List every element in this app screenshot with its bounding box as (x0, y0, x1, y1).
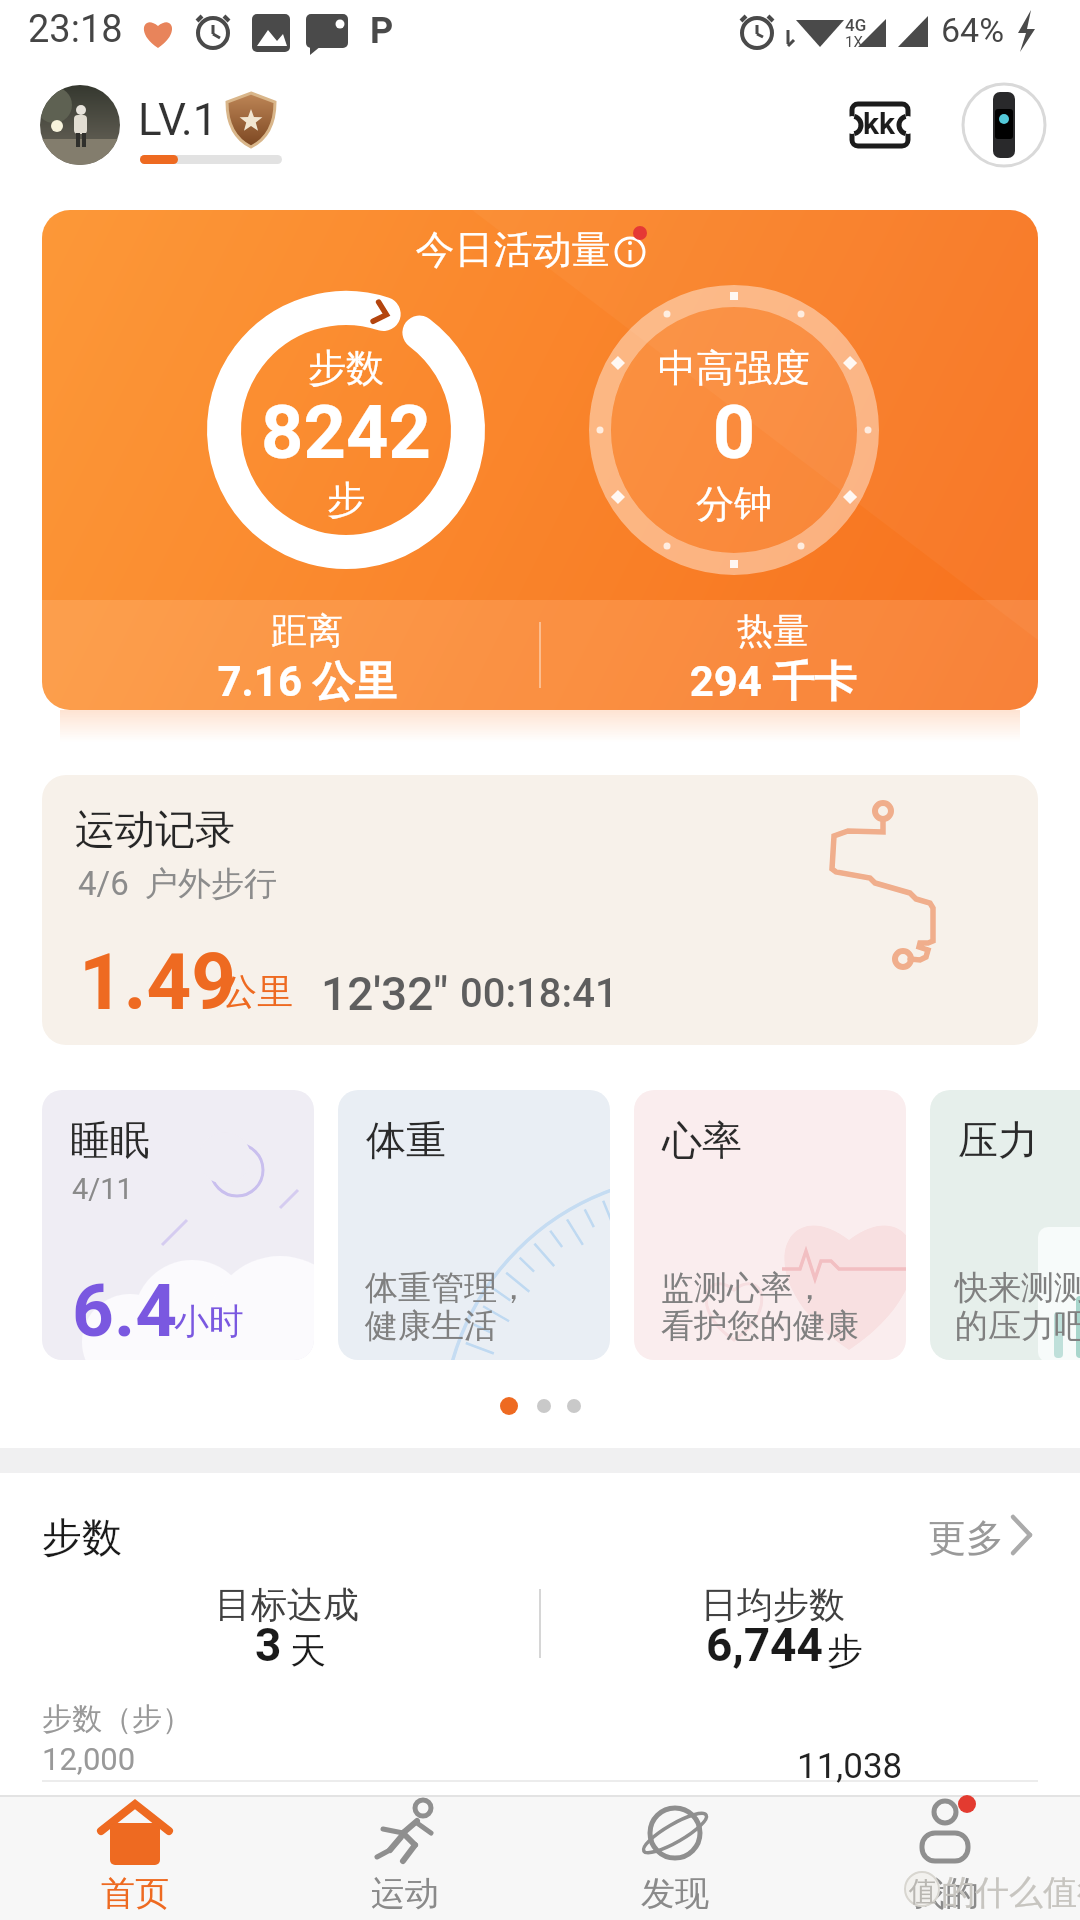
staticText: 6.4 (72, 1268, 178, 1354)
staticText: kk (863, 106, 896, 141)
staticText: 1.49 (79, 937, 236, 1028)
staticText: 更多 (928, 1514, 1004, 1562)
staticText: P (370, 10, 394, 52)
staticText: 步 (827, 1628, 863, 1673)
staticText: 64% (941, 10, 1005, 50)
button[interactable]: 压力 (930, 1090, 1080, 1360)
staticText: 压力 (958, 1115, 1038, 1165)
button[interactable] (962, 83, 1046, 167)
staticText: 23:18 (28, 7, 123, 52)
button[interactable]: 今日活动量 (42, 210, 1038, 710)
staticText: 今日活动量 (42, 225, 1011, 274)
button[interactable]: 发现 (575, 1795, 775, 1920)
staticText: 运动记录 (75, 804, 235, 854)
staticText: 的什么值得买 (941, 1871, 1080, 1914)
staticText: 心率 (662, 1115, 742, 1165)
staticText: LV.1 (138, 94, 218, 146)
staticText: 12,000 (42, 1741, 136, 1777)
staticText: 步数 (42, 1512, 122, 1562)
staticText: 00:18:41 (460, 970, 618, 1017)
button[interactable]: 体重 (338, 1090, 610, 1360)
staticText: 睡眠 (70, 1115, 150, 1165)
staticText: 4/11 (72, 1172, 133, 1206)
button[interactable]: 我的 (845, 1795, 1045, 1920)
staticText: 目标达成 (167, 1582, 407, 1627)
staticText: 4/6 户外步行 (78, 863, 278, 905)
staticText: 8242 (196, 389, 496, 476)
staticText: 中高强度 (614, 344, 854, 392)
staticText: 我的 (845, 1872, 1045, 1915)
button[interactable]: 睡眠 (42, 1090, 314, 1360)
staticText: 11,038 (797, 1746, 903, 1787)
button[interactable] (900, 1500, 1050, 1560)
staticText: 运动 (305, 1872, 505, 1915)
staticText: 值 (909, 1874, 937, 1909)
staticText: 健康生活 (365, 1305, 497, 1347)
button[interactable]: 运动 (305, 1795, 505, 1920)
staticText: 热量 (653, 608, 893, 653)
staticText: 的压力吧 (955, 1305, 1080, 1347)
staticText: 日均步数 (653, 1582, 893, 1627)
staticText: 天 (290, 1628, 326, 1673)
staticText: 6,744 (706, 1618, 823, 1672)
staticText: 1X (845, 33, 863, 51)
staticText: 3 (255, 1618, 282, 1672)
staticText: 监测心率， (661, 1267, 826, 1309)
button[interactable]: 首页 (35, 1795, 235, 1920)
staticText: 距离 (187, 608, 427, 653)
staticText: 看护您的健康 (661, 1305, 859, 1347)
staticText: 首页 (35, 1872, 235, 1915)
staticText: 公里 (221, 969, 293, 1014)
staticText: 步数（步） (42, 1700, 192, 1738)
staticText: 体重 (366, 1115, 446, 1165)
staticText: 快来测测 (955, 1267, 1080, 1309)
staticText: 分钟 (614, 480, 854, 528)
staticText: 步数 (226, 344, 466, 392)
staticText: 0 (614, 389, 854, 476)
staticText: 小时 (174, 1299, 244, 1343)
staticText: 体重管理， (365, 1267, 530, 1309)
staticText: 4G (845, 15, 867, 35)
button[interactable]: 心率 (634, 1090, 906, 1360)
staticText: 发现 (575, 1872, 775, 1915)
staticText: 7.16 公里 (147, 656, 467, 709)
button[interactable]: kk (845, 98, 915, 152)
staticText: 294 千卡 (613, 656, 933, 709)
button[interactable] (40, 85, 120, 165)
staticText: 12'32" (321, 967, 449, 1021)
button[interactable]: 运动记录 (42, 775, 1038, 1045)
staticText: 步 (226, 476, 466, 524)
